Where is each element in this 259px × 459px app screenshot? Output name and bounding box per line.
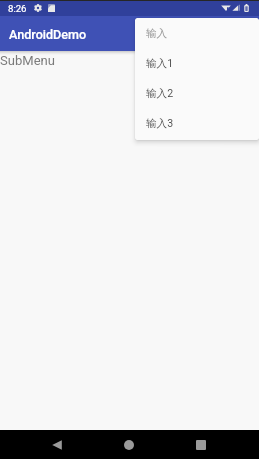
staticText: 输入 [146, 27, 168, 40]
button[interactable]: 输入1 [135, 48, 259, 78]
staticText: AndroidDemo [9, 27, 87, 42]
staticText: 输入3 [146, 117, 174, 130]
button[interactable]: Back [42, 430, 72, 459]
button[interactable]: 输入3 [135, 108, 259, 138]
button[interactable]: 输入 [135, 18, 259, 48]
staticText: 输入2 [146, 87, 174, 100]
button[interactable]: Recent apps [186, 430, 216, 459]
staticText: SubMenu [0, 53, 55, 68]
button[interactable]: Home [114, 430, 144, 459]
staticText: 输入1 [146, 57, 174, 70]
button[interactable]: 输入2 [135, 78, 259, 108]
staticText: 8:26 [8, 3, 27, 14]
